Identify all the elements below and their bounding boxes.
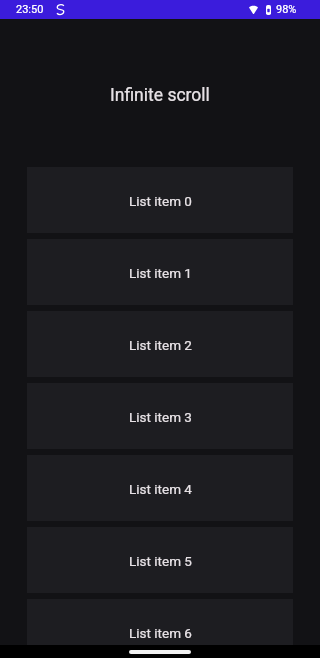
- staticText: 98%: [276, 3, 297, 16]
- staticText: Infinite scroll: [110, 85, 210, 106]
- staticText: List item 3: [129, 409, 192, 425]
- other: Wi-Fi: [249, 5, 258, 14]
- staticText: List item 2: [129, 337, 192, 353]
- staticText: List item 5: [129, 553, 192, 569]
- staticText: List item 1: [129, 265, 192, 281]
- button[interactable]: List item 0: [27, 167, 293, 233]
- button[interactable]: List item 3: [27, 383, 293, 449]
- staticText: List item 4: [129, 481, 192, 497]
- button[interactable]: List item 6: [27, 599, 293, 658]
- staticText: List item 6: [129, 625, 192, 641]
- other: Battery: [266, 5, 271, 15]
- button[interactable]: List item 4: [27, 455, 293, 521]
- button[interactable]: Home: [129, 650, 191, 654]
- button[interactable]: List item 5: [27, 527, 293, 593]
- staticText: List item 0: [129, 193, 192, 209]
- other: Notification: [56, 4, 65, 15]
- button[interactable]: List item 2: [27, 311, 293, 377]
- button[interactable]: List item 1: [27, 239, 293, 305]
- staticText: 23:50: [16, 3, 44, 16]
